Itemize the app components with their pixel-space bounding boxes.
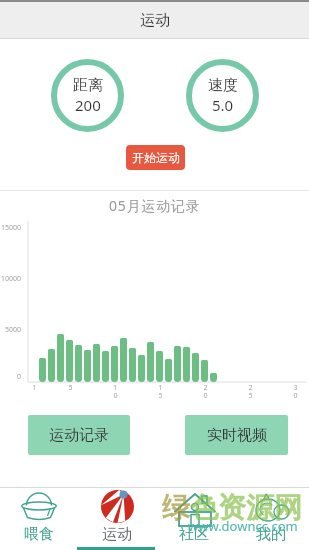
staticText: 10000 bbox=[1, 274, 22, 284]
staticText: 开始运动 bbox=[132, 150, 180, 165]
staticText: 速度 bbox=[208, 76, 238, 95]
button[interactable]: 我的 bbox=[232, 488, 309, 550]
staticText: www.downcc.com bbox=[188, 517, 298, 535]
staticText: 3 0 bbox=[293, 383, 298, 400]
staticText: 0 bbox=[17, 372, 22, 382]
staticText: 色资源网 bbox=[190, 490, 302, 525]
staticText: 运动 bbox=[140, 11, 170, 30]
button[interactable]: 开始运动 bbox=[126, 145, 185, 170]
button[interactable]: 运动记录 bbox=[28, 415, 130, 455]
staticText: 1 0 bbox=[113, 383, 118, 400]
staticText: 5.0 bbox=[212, 95, 234, 115]
staticText: 200 bbox=[75, 95, 101, 115]
staticText: 5000 bbox=[5, 325, 22, 335]
staticText: 2 5 bbox=[248, 383, 253, 400]
staticText: 距离 bbox=[73, 76, 103, 95]
staticText: 15000 bbox=[1, 223, 22, 233]
button[interactable]: 喂食 bbox=[0, 488, 78, 550]
staticText: 运动 bbox=[102, 525, 132, 544]
staticText: 05月运动记录 bbox=[109, 196, 201, 215]
staticText: 绿 bbox=[162, 490, 190, 525]
button[interactable]: 实时视频 bbox=[185, 415, 288, 455]
staticText: 实时视频 bbox=[207, 426, 267, 445]
staticText: 我的 bbox=[256, 525, 286, 544]
staticText: 5 bbox=[68, 383, 73, 393]
button[interactable]: 社区 bbox=[155, 488, 232, 550]
staticText: 1 5 bbox=[158, 383, 163, 400]
staticText: 1 bbox=[32, 383, 37, 393]
staticText: 社区 bbox=[179, 525, 209, 544]
button[interactable]: 运动 bbox=[78, 488, 155, 550]
staticText: 运动记录 bbox=[49, 426, 109, 445]
staticText: 喂食 bbox=[24, 525, 54, 544]
staticText: 2 0 bbox=[203, 383, 208, 400]
